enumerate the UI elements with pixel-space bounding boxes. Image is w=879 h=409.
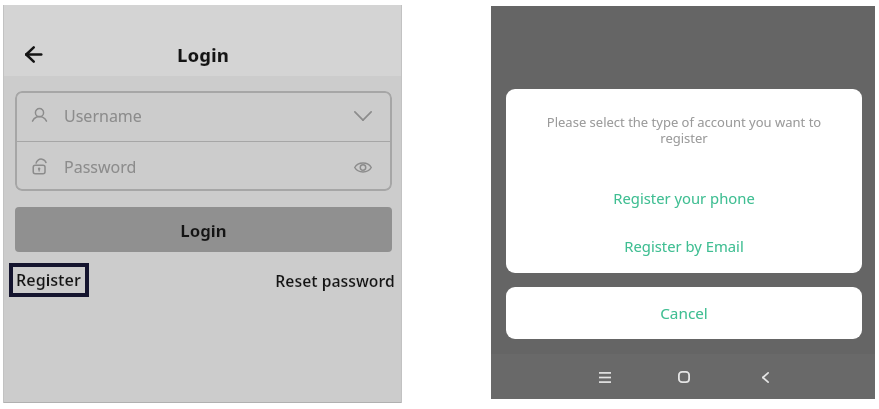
button[interactable]: Register by Email [506, 224, 862, 268]
staticText: Password [64, 156, 137, 178]
staticText: Register your phone [613, 188, 755, 208]
button[interactable]: Back [745, 357, 785, 397]
button[interactable]: Register [9, 263, 89, 297]
button[interactable]: Register your phone [506, 176, 862, 220]
button[interactable]: Reset password [273, 267, 397, 294]
button[interactable]: Login [15, 207, 392, 252]
button[interactable]: Cancel [506, 287, 862, 339]
staticText: Username [64, 105, 142, 127]
staticText: Register by Email [624, 236, 744, 256]
button[interactable]: Back [15, 36, 51, 72]
staticText: Login [177, 42, 229, 67]
button[interactable]: Recent apps [585, 357, 625, 397]
button[interactable]: Password [15, 142, 392, 191]
button[interactable]: Home [664, 357, 704, 397]
staticText: Cancel [660, 303, 708, 324]
staticText: Login [180, 219, 227, 242]
staticText: Reset password [275, 270, 395, 291]
staticText: Register [16, 269, 81, 291]
button[interactable]: Show password [350, 154, 376, 180]
button[interactable]: Show saved usernames [350, 103, 376, 129]
staticText: Please select the type of account you wa… [534, 113, 834, 146]
button[interactable]: Username [15, 91, 392, 141]
